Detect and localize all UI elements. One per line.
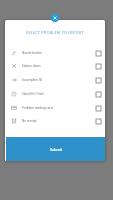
staticText: SELECT PROBLEM TO REPORT xyxy=(26,30,84,35)
button[interactable]: Submit xyxy=(6,137,105,161)
button[interactable]: Slow fill (<7min) xyxy=(5,87,105,101)
button[interactable]: Problem reading card xyxy=(5,101,105,115)
button[interactable]: Close xyxy=(51,14,59,22)
staticText: No receipt xyxy=(22,119,37,123)
staticText: Problem reading card xyxy=(22,106,53,110)
button[interactable]: Station down xyxy=(5,59,105,73)
staticText: Submit xyxy=(50,147,63,152)
staticText: Slow fill (<7min) xyxy=(22,92,45,96)
button[interactable]: No receipt xyxy=(5,114,105,128)
button[interactable]: Nozzle broken xyxy=(5,46,105,60)
button[interactable]: Incomplete fill xyxy=(5,73,105,87)
staticText: Incomplete fill xyxy=(22,78,43,82)
staticText: Nozzle broken xyxy=(22,51,43,55)
staticText: Station down xyxy=(22,64,41,68)
